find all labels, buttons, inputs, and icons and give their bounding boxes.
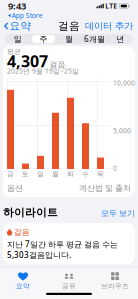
staticText: 브라우즈 xyxy=(101,282,129,290)
staticText: 4,307 xyxy=(7,50,48,72)
staticText: 계산법 및 출처 xyxy=(79,183,131,193)
staticText: 토 xyxy=(22,170,29,178)
button[interactable]: 요약 xyxy=(0,17,32,34)
staticText: 모두 보기 xyxy=(101,208,135,218)
staticText: 일 xyxy=(14,34,22,44)
button[interactable]: 모두 보기 xyxy=(101,208,135,218)
staticText: 걸음 xyxy=(58,19,80,32)
staticText: LTE xyxy=(105,2,117,10)
staticText: 요약 xyxy=(10,19,32,32)
staticText: 요약 xyxy=(16,282,30,290)
button[interactable]: 년 xyxy=(107,34,133,44)
staticText: 6개월 xyxy=(84,34,105,44)
button[interactable]: 데이터 추가 xyxy=(85,18,138,34)
button[interactable]: 월 xyxy=(56,34,82,44)
staticText: 일 xyxy=(37,170,44,178)
staticText: 주 xyxy=(39,34,47,44)
staticText: 5,303걸음입니다. xyxy=(7,250,71,260)
staticText: 공유 xyxy=(62,282,76,290)
staticText: 걸음 xyxy=(49,60,65,69)
staticText: 데이터 추가 xyxy=(85,20,133,32)
staticText: 옵션 xyxy=(7,183,23,193)
staticText: 월 xyxy=(65,34,73,44)
button[interactable]: 걸음 xyxy=(3,223,135,264)
button[interactable]: 계산법 및 출처 xyxy=(79,182,131,194)
staticText: 목 xyxy=(97,170,104,178)
staticText: 하이라이트 xyxy=(3,206,58,219)
staticText: App Store xyxy=(12,11,43,20)
staticText: 걸음 xyxy=(14,227,30,237)
button[interactable]: 브라우즈 xyxy=(92,267,138,292)
staticText: 2025년 9월 19일~25일 xyxy=(7,67,79,75)
button[interactable]: Back to App Store xyxy=(0,11,43,20)
staticText: 0 xyxy=(113,164,117,172)
staticText: 5,000 xyxy=(113,126,131,135)
staticText: 년 xyxy=(116,34,124,44)
staticText: 10,000 xyxy=(113,78,135,87)
button[interactable]: 6개월 xyxy=(82,34,107,44)
staticText: 화 xyxy=(67,170,74,178)
button[interactable]: 주 xyxy=(31,34,56,44)
staticText: 금 xyxy=(7,170,14,178)
button[interactable]: 요약 xyxy=(0,267,46,292)
staticText: 월 xyxy=(52,170,59,178)
staticText: 수 xyxy=(82,170,89,178)
button[interactable]: 옵션 xyxy=(7,182,23,194)
staticText: 지난 7일간 하루 평균 걸음 수는 xyxy=(7,239,118,249)
staticText: 평균 xyxy=(7,47,21,56)
button[interactable]: 공유 xyxy=(46,267,92,292)
staticText: 9:43 xyxy=(8,0,26,12)
button[interactable]: 일 xyxy=(5,34,31,44)
